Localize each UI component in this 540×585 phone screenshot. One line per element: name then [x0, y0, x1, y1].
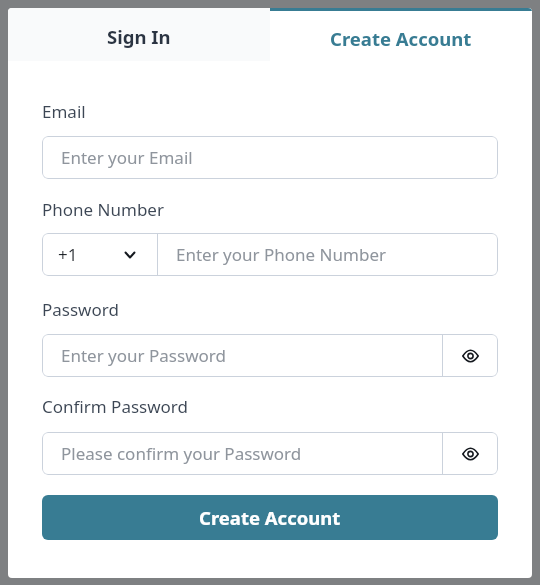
staticText: +1 [58, 243, 78, 266]
button[interactable] [443, 334, 498, 377]
staticText: Enter your Password [61, 344, 226, 367]
staticText: Sign In [107, 24, 171, 49]
staticText: Create Account [330, 26, 472, 51]
button[interactable]: Enter your Password [42, 334, 442, 377]
staticText: Password [42, 298, 119, 321]
staticText: Confirm Password [42, 395, 188, 418]
button[interactable]: Create Account [42, 495, 498, 540]
button[interactable]: Create Account [270, 8, 532, 61]
staticText: Enter your Email [61, 146, 193, 169]
button[interactable] [443, 432, 498, 475]
staticText: Enter your Phone Number [176, 243, 387, 266]
staticText: Create Account [199, 505, 341, 530]
button[interactable]: +1 [42, 233, 157, 276]
staticText: Phone Number [42, 198, 164, 221]
button[interactable]: Please confirm your Password [42, 432, 442, 475]
button[interactable]: Enter your Phone Number [158, 233, 498, 276]
button[interactable]: Sign In [8, 8, 270, 61]
staticText: Please confirm your Password [61, 442, 302, 465]
staticText: Email [42, 100, 86, 123]
button[interactable]: Enter your Email [42, 136, 498, 179]
